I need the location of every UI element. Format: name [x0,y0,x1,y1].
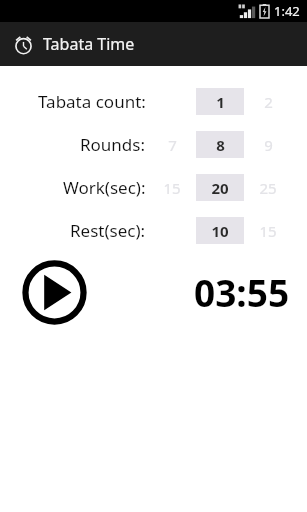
button[interactable]: 9 [244,131,292,158]
staticText: 15 [259,221,277,241]
staticText: 9 [264,135,273,155]
staticText: 1:42 [274,2,300,20]
staticText: Rest(sec): [70,219,146,242]
staticText: 1 [216,92,225,112]
button[interactable]: 8 [196,131,244,158]
button[interactable]: Start timer [21,259,88,326]
staticText: Tabata count: [38,90,146,113]
staticText: 03:55 [194,267,290,317]
button[interactable]: 7 [148,131,196,158]
button[interactable]: 25 [244,174,292,201]
button[interactable]: 20 [196,174,244,201]
staticText: 8 [216,135,225,155]
button[interactable]: 15 [148,174,196,201]
staticText: 7 [168,135,177,155]
button[interactable]: 10 [196,217,244,244]
staticText: Work(sec): [63,176,146,199]
staticText: 10 [211,221,229,241]
button[interactable]: 2 [244,88,292,115]
staticText: Tabata Time [43,33,135,55]
staticText: 2 [264,92,273,112]
button[interactable]: 15 [244,217,292,244]
staticText: 15 [163,178,181,198]
staticText: Rounds: [80,133,146,156]
staticText: 25 [259,178,277,198]
button[interactable]: 1 [196,88,244,115]
staticText: 20 [211,178,229,198]
